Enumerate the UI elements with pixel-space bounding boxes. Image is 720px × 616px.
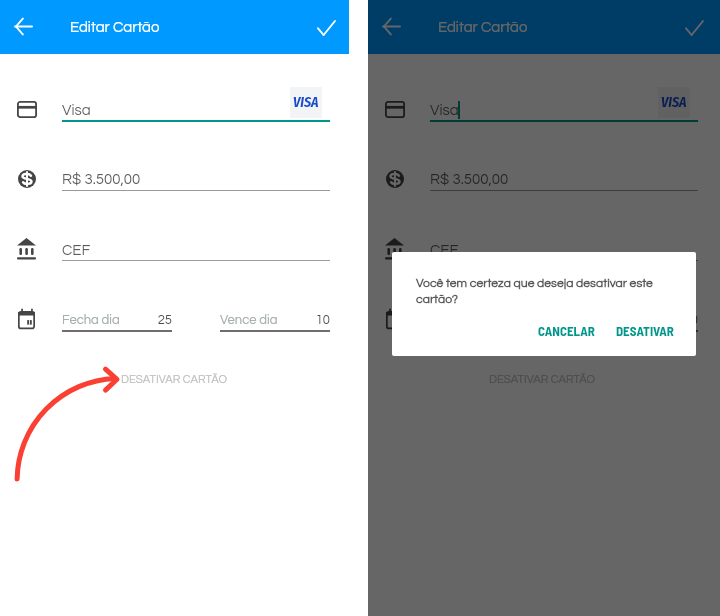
staticText: Visa [430, 103, 459, 118]
staticText: 25 [62, 313, 172, 326]
staticText: CEF [62, 243, 91, 258]
staticText: Você tem certeza que deseja desativar es… [416, 277, 660, 306]
staticText: VISA [661, 94, 687, 111]
button[interactable]: Save [310, 11, 343, 44]
button[interactable]: Save [678, 11, 711, 44]
button[interactable]: DESATIVAR CARTÃO [108, 369, 241, 391]
staticText: R$ 3.500,00 [62, 172, 141, 187]
staticText: 10 [588, 313, 698, 326]
staticText: DESATIVAR CARTÃO [121, 374, 228, 386]
staticText: Fecha dia [62, 313, 120, 326]
staticText: CANCELAR [538, 323, 595, 339]
staticText: VISA [293, 94, 319, 111]
staticText: DESATIVAR [616, 323, 674, 339]
button[interactable]: CANCELAR [526, 316, 607, 346]
staticText: DESATIVAR CARTÃO [489, 374, 596, 386]
button[interactable]: Back [375, 10, 408, 43]
staticText: Vence dia [220, 313, 278, 326]
staticText: 10 [220, 313, 330, 326]
staticText: Editar Cartão [70, 20, 160, 35]
staticText: Editar Cartão [438, 20, 528, 35]
staticText: R$ 3.500,00 [430, 172, 509, 187]
staticText: Visa [62, 103, 91, 118]
button[interactable]: DESATIVAR CARTÃO [476, 369, 609, 391]
button[interactable]: DESATIVAR [604, 316, 686, 346]
button[interactable]: Back [7, 10, 40, 43]
staticText: CEF [430, 243, 459, 258]
